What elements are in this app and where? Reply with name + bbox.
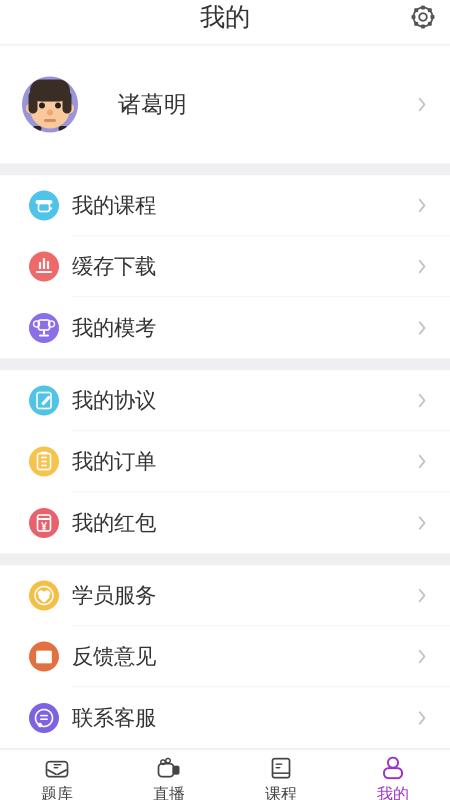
staticText: 我的协议 — [72, 387, 156, 414]
button[interactable]: 我的订单 — [0, 431, 450, 492]
button[interactable]: 联系客服 — [0, 687, 450, 748]
staticText: 我的模考 — [72, 315, 156, 341]
staticText: 反馈意见 — [72, 643, 156, 670]
staticText: 诸葛明 — [118, 91, 187, 118]
staticText: 课程 — [265, 784, 297, 800]
button[interactable]: Settings — [396, 0, 450, 44]
button[interactable]: 我的协议 — [0, 370, 450, 431]
staticText: 我的红包 — [72, 510, 156, 536]
button[interactable]: 学员服务 — [0, 565, 450, 626]
staticText: 缓存下载 — [72, 253, 156, 280]
staticText: 直播 — [153, 784, 185, 800]
button[interactable]: 缓存下载 — [0, 236, 450, 297]
button[interactable]: 直播 — [113, 748, 225, 800]
staticText: 学员服务 — [72, 582, 156, 609]
staticText: 我的订单 — [72, 448, 156, 475]
staticText: 我的 — [377, 784, 409, 800]
staticText: ¥ — [41, 519, 47, 533]
staticText: 题库 — [41, 784, 73, 800]
staticText: 联系客服 — [72, 705, 156, 731]
button[interactable]: 我的课程 — [0, 175, 450, 236]
button[interactable]: ¥ — [0, 492, 450, 553]
button[interactable]: 反馈意见 — [0, 626, 450, 687]
button[interactable]: 课程 — [225, 748, 337, 800]
button[interactable]: 我的 — [337, 748, 449, 800]
button[interactable]: 题库 — [1, 748, 113, 800]
button[interactable]: 诸葛明 — [0, 45, 450, 163]
staticText: 我的课程 — [72, 192, 156, 219]
button[interactable]: 我的模考 — [0, 297, 450, 358]
staticText: 我的 — [200, 1, 250, 32]
